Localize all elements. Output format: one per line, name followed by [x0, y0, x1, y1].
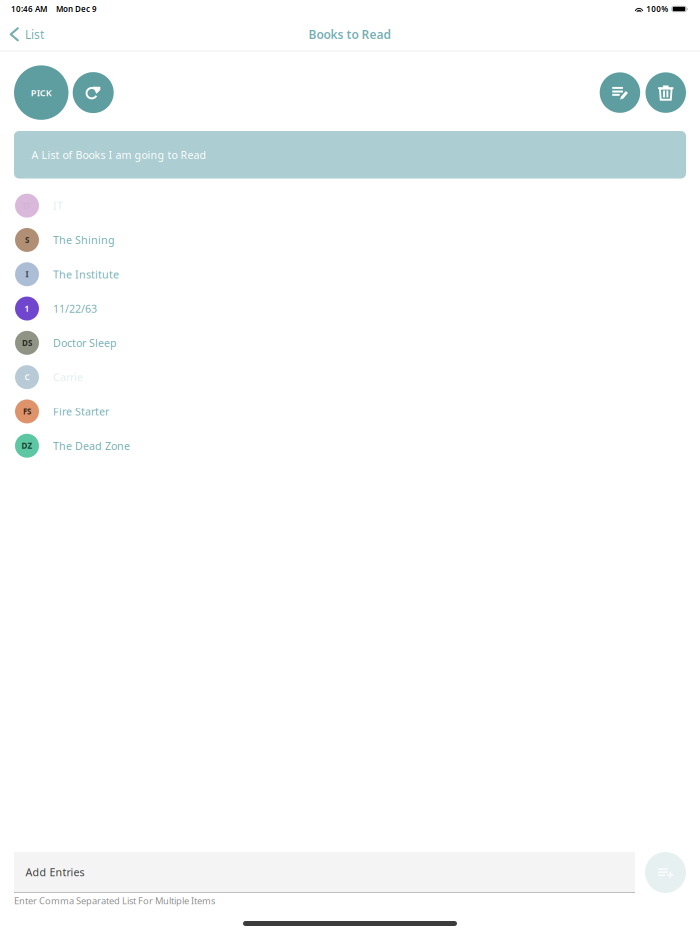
button[interactable]: Add entries [645, 852, 686, 893]
staticText: The Shining [53, 233, 115, 247]
button[interactable]: FS [0, 394, 700, 429]
staticText: C [24, 372, 29, 382]
staticText: 1 [24, 303, 29, 314]
button[interactable]: I [0, 257, 700, 291]
staticText: A List of Books I am going to Read [31, 148, 206, 162]
staticText: Fire Starter [53, 404, 109, 419]
staticText: I [25, 269, 28, 279]
button[interactable]: Delete list [645, 72, 686, 113]
staticText: List [25, 26, 44, 42]
button[interactable]: 1 [0, 291, 700, 326]
staticText: Doctor Sleep [53, 336, 117, 350]
staticText: IT [53, 199, 63, 213]
staticText: The Institute [53, 267, 119, 281]
staticText: Books to Read [308, 26, 391, 42]
staticText: S [25, 235, 29, 245]
staticText: Enter Comma Separated List For Multiple … [14, 894, 215, 907]
button[interactable]: DS [0, 326, 700, 360]
button[interactable]: C [0, 360, 700, 394]
staticText: DZ [21, 440, 32, 451]
staticText: 100% [646, 4, 668, 14]
staticText: The Dead Zone [53, 439, 130, 453]
button[interactable]: Refresh [73, 72, 114, 113]
staticText: 11/22/63 [53, 301, 97, 316]
staticText: Mon Dec 9 [56, 4, 97, 14]
staticText: DS [22, 337, 32, 348]
button[interactable]: IT [0, 188, 700, 223]
button[interactable]: Pick a random book [14, 65, 68, 120]
staticText: Carrie [53, 370, 83, 384]
staticText: Add Entries [25, 865, 84, 879]
button[interactable]: S [0, 223, 700, 257]
button[interactable]: DZ [0, 429, 700, 463]
staticText: PICK [31, 86, 52, 99]
button[interactable]: Edit list [600, 72, 640, 113]
staticText: 10:46 AM [11, 4, 47, 14]
staticText: FS [23, 406, 31, 417]
button[interactable]: List [0, 18, 52, 51]
